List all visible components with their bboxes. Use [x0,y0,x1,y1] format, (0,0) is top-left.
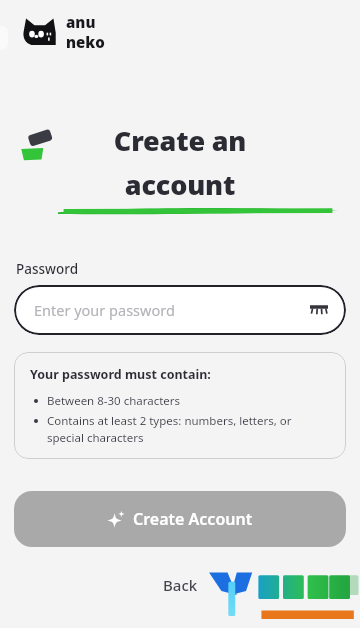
button[interactable]: Show password [306,297,332,323]
staticText: Your password must contain: [30,366,211,383]
staticText: Between 8-30 characters [47,393,181,409]
staticText: Enter your password [34,300,175,320]
button[interactable]: anu neko home [20,12,105,52]
button[interactable]: Back [149,570,212,600]
staticText: anu [66,12,96,32]
staticText: Contains at least 2 types: numbers, lett… [47,413,330,445]
staticText: neko [66,32,105,52]
button[interactable]: Create Account [14,491,346,547]
button[interactable]: Enter your password [14,285,346,335]
staticText: Create Account [133,508,253,530]
staticText: Create an account [60,122,300,202]
staticText: Back [163,575,198,595]
staticText: Password [16,260,79,278]
